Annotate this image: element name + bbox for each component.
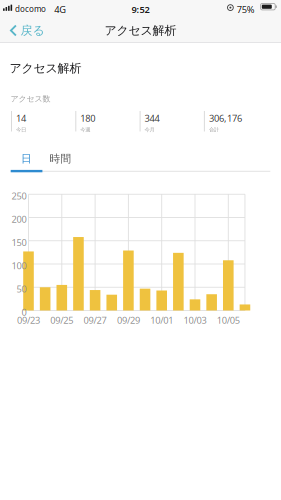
button[interactable]: 戻る <box>0 18 54 43</box>
staticText: 10/01 <box>150 314 173 326</box>
staticText: 日 <box>21 152 32 165</box>
staticText: 50 <box>16 283 26 295</box>
staticText: 今月 <box>145 126 155 133</box>
staticText: 今週 <box>80 126 90 133</box>
staticText: 9:52 <box>131 3 149 16</box>
staticText: 0 <box>21 306 26 318</box>
staticText: 今日 <box>16 126 26 133</box>
staticText: 09/25 <box>50 314 73 326</box>
staticText: 09/23 <box>17 314 40 326</box>
staticText: docomo <box>15 4 46 14</box>
staticText: 75% <box>237 3 255 16</box>
staticText: 4G <box>54 3 66 16</box>
staticText: 10/03 <box>183 314 206 326</box>
staticText: 10/05 <box>217 314 240 326</box>
staticText: 306,176 <box>209 112 242 124</box>
staticText: 100 <box>11 259 26 272</box>
staticText: 時間 <box>49 152 71 165</box>
staticText: 09/29 <box>117 314 140 326</box>
staticText: アクセス数 <box>10 94 50 104</box>
button[interactable]: 時間 <box>44 151 76 171</box>
button[interactable]: 日 <box>11 151 42 171</box>
staticText: 200 <box>11 213 26 225</box>
staticText: 戻る <box>20 23 44 38</box>
staticText: アクセス解析 <box>104 23 176 38</box>
staticText: アクセス解析 <box>10 61 82 76</box>
staticText: 合計 <box>209 126 219 133</box>
staticText: 150 <box>11 236 26 249</box>
staticText: 14 <box>16 112 26 124</box>
staticText: 09/27 <box>84 314 107 326</box>
staticText: 344 <box>145 112 160 124</box>
staticText: 250 <box>11 190 26 202</box>
staticText: 180 <box>80 112 95 124</box>
